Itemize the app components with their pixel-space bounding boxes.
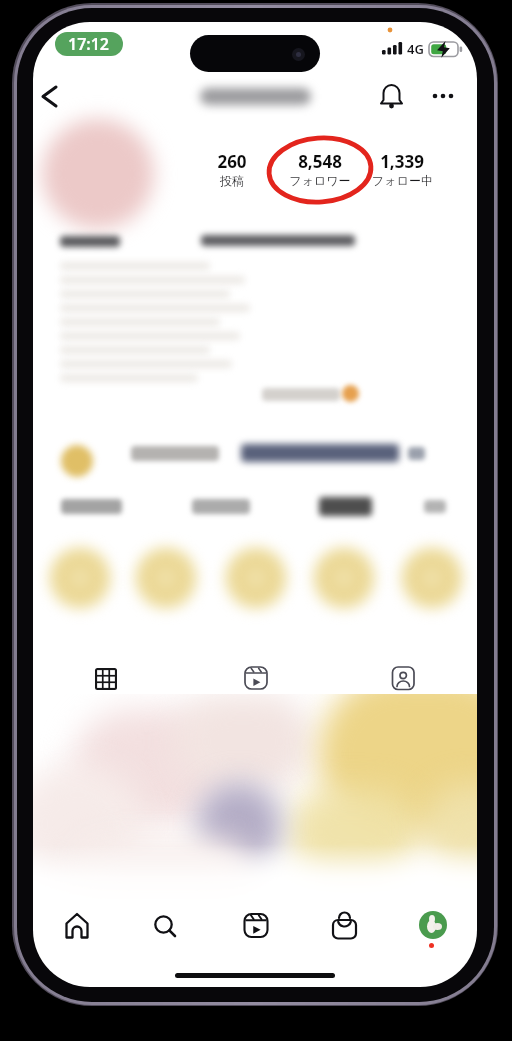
button[interactable]: 260: [187, 150, 277, 188]
staticText: フォロー中: [372, 173, 433, 188]
button[interactable]: [419, 911, 447, 939]
button[interactable]: [375, 80, 407, 112]
staticText: 8,548: [298, 150, 342, 173]
button[interactable]: [234, 915, 278, 959]
button[interactable]: [142, 915, 186, 959]
button[interactable]: [381, 657, 425, 701]
button[interactable]: [35, 80, 69, 112]
staticText: 4G: [407, 40, 424, 58]
button[interactable]: [322, 915, 366, 959]
button[interactable]: [234, 657, 278, 701]
button[interactable]: 8,548: [275, 150, 365, 188]
staticText: 投稿: [220, 173, 244, 188]
staticText: 260: [217, 150, 247, 173]
button[interactable]: 1,339: [357, 150, 447, 188]
staticText: 17:12: [68, 33, 110, 55]
button[interactable]: [427, 80, 459, 112]
staticText: フォロワー: [289, 173, 351, 188]
staticText: 1,339: [380, 150, 424, 173]
button[interactable]: [84, 657, 128, 701]
button[interactable]: [55, 915, 99, 959]
